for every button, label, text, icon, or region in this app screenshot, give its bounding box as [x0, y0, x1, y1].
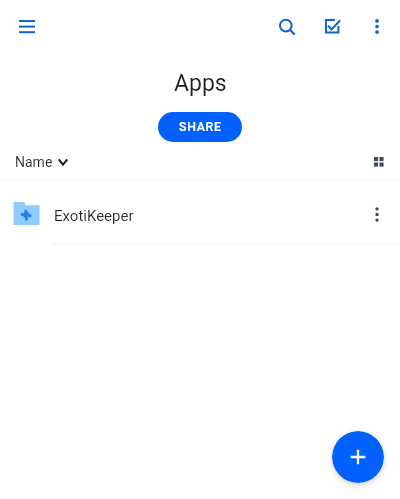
staticText: ExotiKeeper — [54, 207, 134, 225]
button[interactable]: ExotiKeeper — [0, 181, 400, 245]
button[interactable]: Grid view — [366, 149, 392, 175]
button[interactable]: Add — [332, 431, 384, 483]
button[interactable]: Navigation menu — [4, 3, 50, 49]
staticText: Name — [15, 154, 53, 170]
button[interactable]: Search — [264, 4, 310, 50]
staticText: SHARE — [179, 120, 222, 134]
button[interactable]: More options — [354, 3, 400, 49]
button[interactable]: Select all — [310, 4, 356, 50]
button[interactable]: Item options — [357, 194, 397, 234]
button[interactable]: SHARE — [158, 112, 242, 142]
staticText: Apps — [174, 70, 227, 97]
button[interactable]: Name — [15, 154, 68, 170]
